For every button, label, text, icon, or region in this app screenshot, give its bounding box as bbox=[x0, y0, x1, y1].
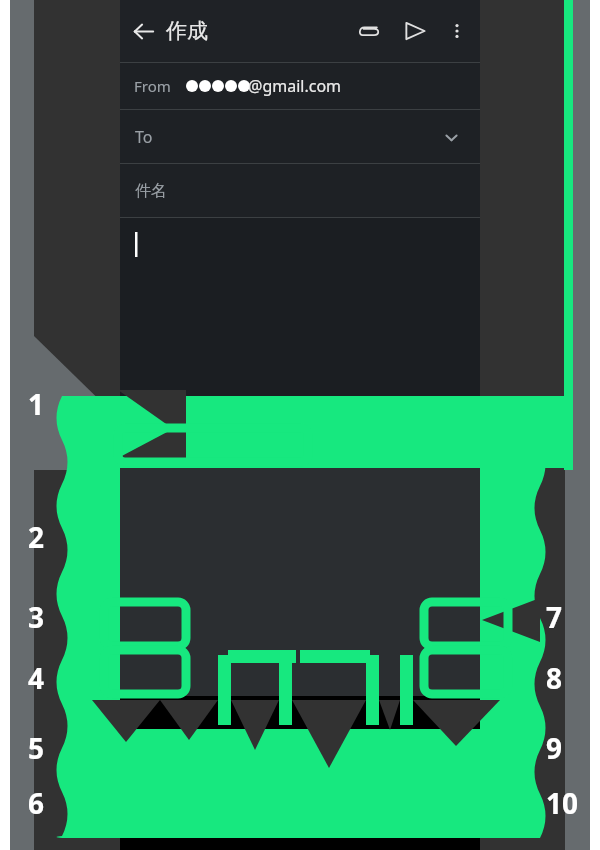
button[interactable]: Shift bbox=[122, 731, 172, 768]
button[interactable]: j bbox=[338, 688, 370, 725]
button[interactable]: u bbox=[338, 645, 370, 682]
staticText: 4 bbox=[254, 645, 259, 656]
button[interactable]: r bbox=[230, 645, 262, 682]
button[interactable]: Attach file bbox=[346, 8, 392, 54]
button[interactable]: Back bbox=[128, 602, 159, 633]
staticText: g bbox=[276, 694, 288, 719]
staticText: 4 bbox=[28, 659, 45, 697]
button[interactable]: Send bbox=[392, 8, 438, 54]
staticText: 8 bbox=[398, 645, 403, 656]
button[interactable]: p bbox=[446, 645, 478, 682]
button[interactable]: More options bbox=[438, 12, 476, 50]
staticText: w bbox=[167, 653, 182, 678]
button[interactable]: v bbox=[284, 731, 316, 768]
staticText: s bbox=[170, 694, 179, 719]
staticText: 2 bbox=[182, 645, 187, 656]
button[interactable]: w bbox=[158, 645, 190, 682]
staticText: j bbox=[352, 694, 357, 719]
staticText: k bbox=[385, 694, 395, 719]
button[interactable]: Backspace bbox=[428, 731, 478, 768]
button[interactable]: f bbox=[230, 688, 262, 725]
button[interactable]: Stickers bbox=[175, 601, 207, 633]
staticText: 1 bbox=[28, 385, 45, 423]
button[interactable]: More bbox=[389, 601, 421, 633]
staticText: c bbox=[260, 737, 269, 762]
button[interactable]: Back bbox=[120, 8, 166, 54]
button[interactable]: h bbox=[302, 688, 334, 725]
staticText: 6 bbox=[326, 645, 331, 656]
button[interactable]: Expand recipients bbox=[430, 116, 472, 158]
staticText: 3 bbox=[218, 645, 223, 656]
staticText: r bbox=[242, 653, 250, 678]
staticText: y bbox=[313, 653, 323, 678]
button[interactable]: t bbox=[266, 645, 298, 682]
button[interactable]: g bbox=[266, 688, 298, 725]
staticText: h bbox=[312, 694, 324, 719]
button[interactable]: s bbox=[158, 688, 190, 725]
button[interactable]: o bbox=[410, 645, 442, 682]
button[interactable] bbox=[120, 218, 480, 596]
staticText: 0 bbox=[470, 645, 475, 656]
button[interactable]: z bbox=[176, 731, 208, 768]
staticText: — bbox=[453, 694, 471, 719]
staticText: 9 bbox=[434, 645, 439, 656]
staticText: 7 bbox=[362, 645, 367, 656]
staticText: From bbox=[134, 76, 171, 96]
button[interactable]: To bbox=[120, 110, 480, 163]
staticText: 1 bbox=[146, 645, 151, 656]
button[interactable]: k bbox=[374, 688, 406, 725]
staticText: 8 bbox=[546, 659, 563, 697]
button[interactable]: — bbox=[446, 688, 478, 725]
button[interactable]: b bbox=[320, 731, 352, 768]
staticText: 5 bbox=[28, 729, 45, 767]
button[interactable]: d bbox=[194, 688, 226, 725]
staticText: 6 bbox=[28, 784, 45, 822]
staticText: q bbox=[132, 653, 144, 678]
button[interactable]: l bbox=[410, 688, 442, 725]
staticText: l bbox=[424, 694, 429, 719]
button[interactable]: e bbox=[194, 645, 226, 682]
button[interactable]: i bbox=[374, 645, 406, 682]
staticText: d bbox=[204, 694, 216, 719]
button[interactable]: q bbox=[122, 645, 154, 682]
button[interactable]: Hide keyboard bbox=[120, 817, 162, 850]
button[interactable]: Voice input bbox=[438, 601, 470, 633]
button[interactable]: From bbox=[120, 63, 480, 109]
button[interactable]: a bbox=[122, 688, 154, 725]
staticText: z bbox=[188, 737, 197, 762]
button[interactable]: c bbox=[248, 731, 280, 768]
staticText: 7 bbox=[546, 598, 563, 636]
staticText: 9 bbox=[546, 729, 563, 767]
staticText: a bbox=[133, 694, 144, 719]
button[interactable]: y bbox=[302, 645, 334, 682]
staticText: 件名 bbox=[135, 181, 167, 201]
button[interactable]: Switch keyboard bbox=[432, 817, 474, 850]
button[interactable]: 件名 bbox=[120, 164, 480, 217]
staticText: f bbox=[243, 694, 250, 719]
staticText: p bbox=[456, 653, 468, 678]
staticText: b bbox=[330, 737, 342, 762]
staticText: 10 bbox=[546, 784, 579, 822]
